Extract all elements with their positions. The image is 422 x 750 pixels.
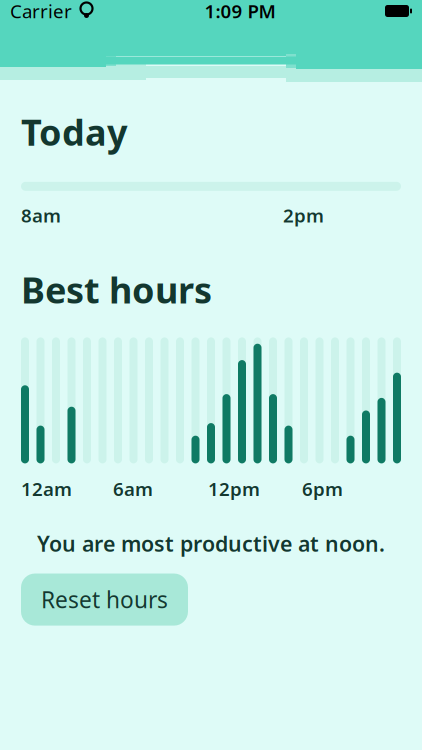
staticText: 2pm [283, 203, 324, 228]
staticText: Best hours [21, 266, 212, 313]
staticText: Reset hours [41, 584, 168, 615]
staticText: 8am [21, 203, 61, 228]
staticText: Today [21, 108, 128, 156]
staticText: 12pm [208, 476, 260, 501]
staticText: Carrier [10, 0, 72, 23]
staticText: 12am [21, 476, 72, 501]
staticText: You are most productive at noon. [37, 529, 385, 557]
staticText: 1:09 PM [204, 0, 275, 23]
button[interactable]: Reset hours [21, 573, 188, 626]
staticText: 6pm [302, 476, 343, 501]
staticText: 6am [113, 476, 153, 501]
